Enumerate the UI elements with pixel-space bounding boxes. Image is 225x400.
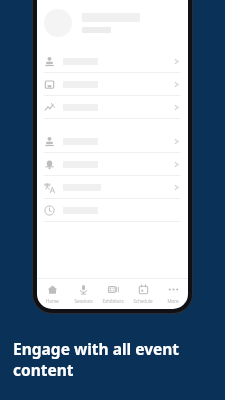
button[interactable]: Exhibitors <box>98 279 128 309</box>
staticText: Schedule <box>133 298 153 304</box>
staticText: More <box>167 298 179 304</box>
staticText: Sessions <box>74 298 93 304</box>
button[interactable]: Schedule <box>128 279 158 309</box>
button[interactable]: Activity feed <box>37 96 188 119</box>
staticText: Home <box>46 298 59 304</box>
button[interactable]: Help and support <box>37 199 188 222</box>
button[interactable]: Sessions <box>68 279 98 309</box>
button[interactable]: Profile details <box>37 50 188 73</box>
button[interactable]: Language <box>37 176 188 199</box>
button[interactable]: Notifications <box>37 153 188 176</box>
button[interactable]: Profile <box>44 7 178 39</box>
staticText: content <box>13 359 74 380</box>
button[interactable]: Home <box>37 279 68 309</box>
staticText: Engage with all event <box>13 338 180 359</box>
button[interactable]: My agenda <box>37 73 188 96</box>
button[interactable]: More <box>158 279 188 309</box>
staticText: Exhibitors <box>102 298 124 304</box>
button[interactable]: Contacts <box>37 130 188 153</box>
